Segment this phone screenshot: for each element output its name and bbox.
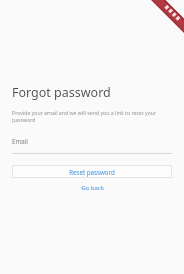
button[interactable]: Reset password: [12, 165, 172, 178]
staticText: Go back: [81, 184, 104, 192]
button[interactable]: Go back: [12, 183, 172, 193]
staticText: Provide your email and we will send you …: [12, 109, 172, 123]
staticText: Email: [12, 137, 28, 145]
other: Beta ribbon: [138, 0, 184, 46]
staticText: Forgot password: [12, 84, 111, 101]
staticText: Reset password: [69, 168, 115, 176]
button[interactable]: Email: [12, 137, 172, 154]
